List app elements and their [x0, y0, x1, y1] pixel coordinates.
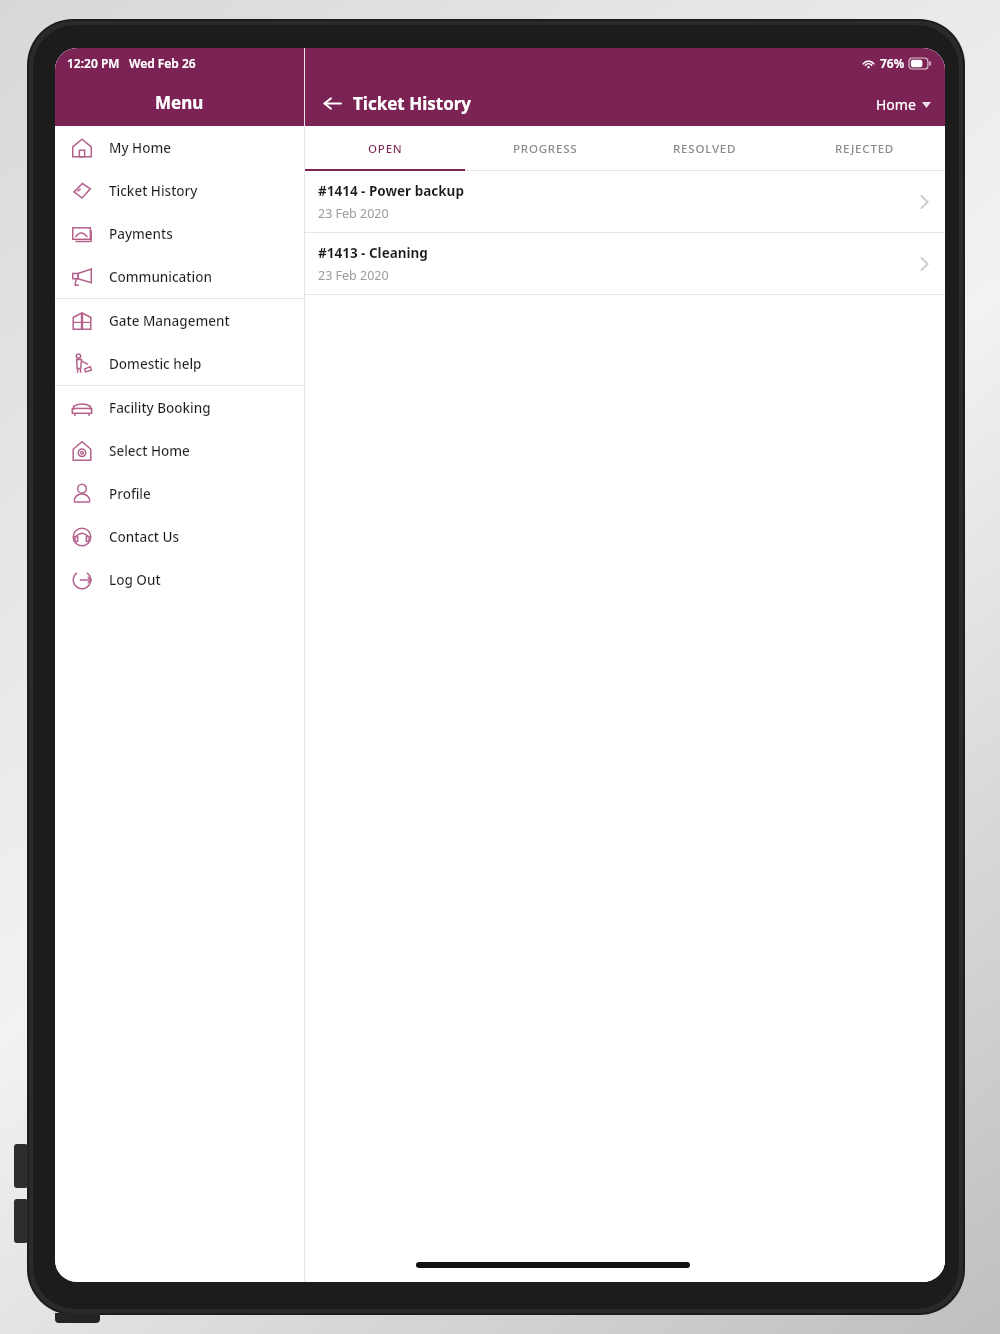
staticText: #1413 - Cleaning — [318, 244, 428, 262]
staticText: RESOLVED — [673, 141, 737, 157]
button[interactable]: My Home — [55, 126, 304, 169]
staticText: Ticket History — [353, 92, 472, 115]
staticText: Ticket History — [109, 182, 198, 200]
staticText: Wed Feb 26 — [129, 55, 196, 71]
button[interactable]: Payments — [55, 212, 304, 255]
staticText: 76% — [880, 55, 905, 71]
staticText: 23 Feb 2020 — [318, 267, 389, 284]
staticText: Facility Booking — [109, 399, 211, 417]
button[interactable]: Contact Us — [55, 515, 304, 558]
button[interactable]: #1413 - Cleaning — [305, 233, 945, 294]
staticText: REJECTED — [835, 141, 895, 157]
staticText: Contact Us — [109, 528, 180, 546]
staticText: Home — [876, 95, 916, 114]
staticText: Gate Management — [109, 312, 230, 330]
staticText: Payments — [109, 225, 173, 243]
button[interactable]: PROGRESS — [465, 126, 625, 171]
button[interactable]: Log Out — [55, 558, 304, 601]
button[interactable]: Back — [319, 90, 345, 116]
staticText: My Home — [109, 139, 171, 157]
button[interactable]: Facility Booking — [55, 386, 304, 429]
staticText: 12:20 PM — [67, 55, 120, 71]
staticText: #1414 - Power backup — [318, 182, 464, 200]
button[interactable]: #1414 - Power backup — [305, 171, 945, 232]
button[interactable]: Select Home — [55, 429, 304, 472]
button[interactable]: OPEN — [305, 126, 465, 171]
staticText: Select Home — [109, 442, 190, 460]
button[interactable]: RESOLVED — [625, 126, 785, 171]
button[interactable]: Ticket History — [55, 169, 304, 212]
staticText: OPEN — [368, 141, 403, 157]
staticText: Domestic help — [109, 355, 202, 373]
staticText: Profile — [109, 485, 151, 503]
button[interactable]: REJECTED — [785, 126, 945, 171]
staticText: Log Out — [109, 571, 161, 589]
button[interactable]: Domestic help — [55, 342, 304, 385]
staticText: Menu — [155, 91, 204, 114]
button[interactable]: Gate Management — [55, 299, 304, 342]
button[interactable]: Home — [876, 95, 931, 114]
button[interactable]: Communication — [55, 255, 304, 298]
staticText: PROGRESS — [513, 141, 578, 157]
staticText: 23 Feb 2020 — [318, 205, 389, 222]
staticText: Communication — [109, 268, 212, 286]
button[interactable]: Profile — [55, 472, 304, 515]
